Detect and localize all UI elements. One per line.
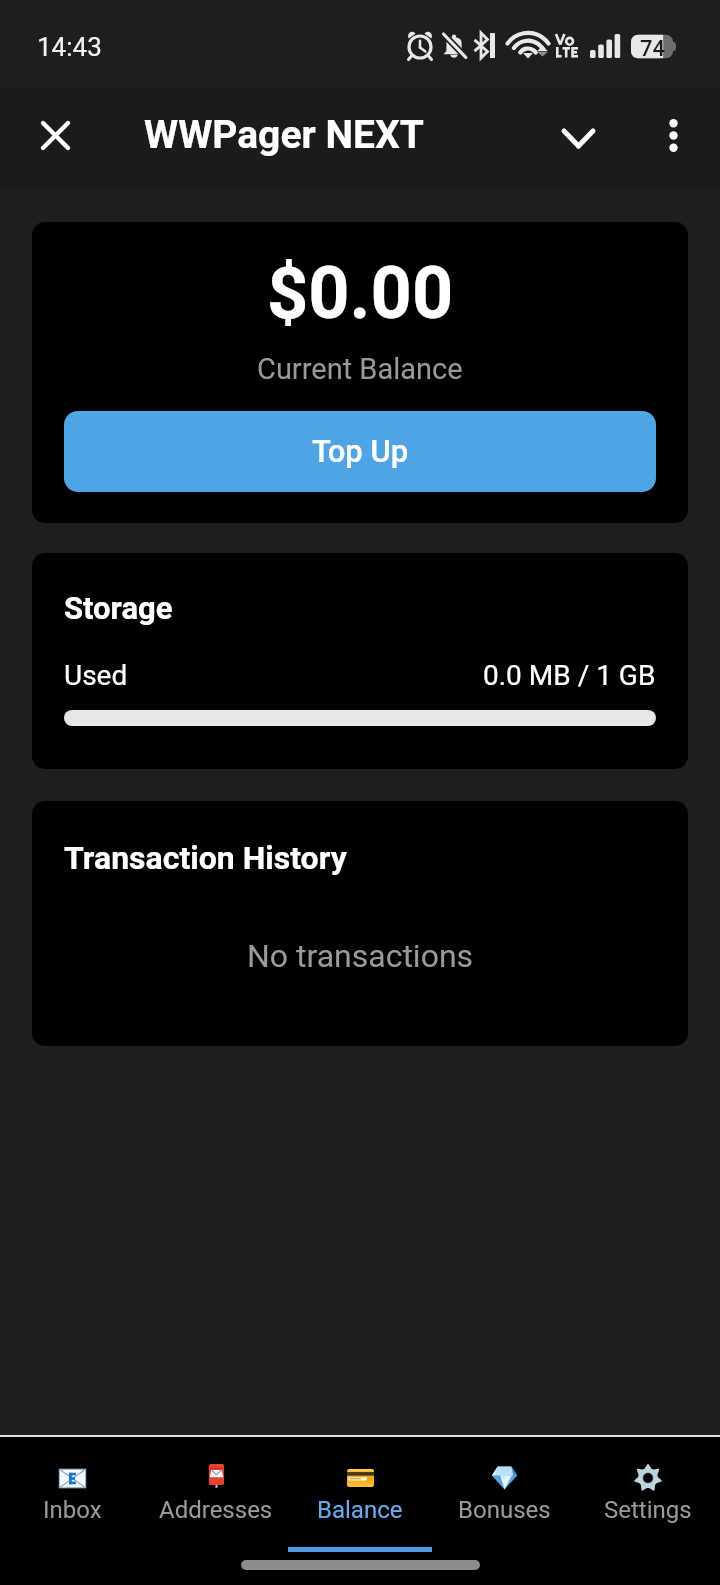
staticText: No transactions [64, 937, 656, 975]
staticText: WWPager NEXT [144, 112, 424, 158]
staticText: Transaction History [64, 839, 347, 877]
staticText: Bonuses [458, 1496, 551, 1524]
button[interactable]: Bonuses [432, 1437, 576, 1541]
staticText: 14:43 [37, 32, 102, 62]
staticText: $0.00 [267, 251, 454, 335]
button[interactable]: Expand [536, 96, 620, 180]
staticText: Current Balance [257, 352, 463, 386]
staticText: Settings [604, 1496, 692, 1524]
staticText: Storage [64, 590, 173, 626]
button[interactable]: Close [13, 93, 97, 177]
button[interactable]: Top Up [64, 411, 656, 492]
button[interactable]: Settings [576, 1437, 720, 1541]
staticText: Balance [317, 1496, 403, 1524]
staticText: 0.0 MB / 1 GB [483, 659, 656, 692]
staticText: Top Up [312, 433, 409, 469]
staticText: 74 [640, 36, 666, 62]
staticText: Inbox [43, 1496, 102, 1524]
button[interactable]: More options [631, 93, 715, 177]
button[interactable]: Inbox [0, 1437, 144, 1541]
button[interactable]: Addresses [144, 1437, 288, 1541]
staticText: Addresses [159, 1496, 273, 1524]
staticText: Used [64, 659, 128, 692]
button[interactable]: Balance [288, 1437, 432, 1541]
